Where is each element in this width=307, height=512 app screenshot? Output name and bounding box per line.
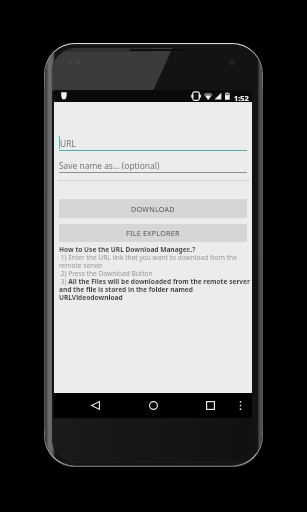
button[interactable]: URL bbox=[59, 136, 247, 151]
button[interactable]: Home bbox=[142, 395, 164, 416]
staticText: How to Use the URL Download Manager..? 1… bbox=[59, 245, 250, 302]
staticText: URL bbox=[60, 138, 76, 149]
staticText: 1:52 bbox=[234, 93, 249, 103]
staticText: FILE EXPLORER bbox=[126, 228, 180, 238]
button[interactable]: More options bbox=[233, 395, 247, 416]
staticText: Save name as... (optional) bbox=[59, 160, 160, 171]
button[interactable]: Recent apps bbox=[199, 395, 221, 416]
button[interactable]: Back bbox=[84, 395, 106, 416]
button[interactable]: Save name as... (optional) bbox=[59, 160, 247, 173]
staticText: DOWNLOAD bbox=[131, 204, 175, 214]
button[interactable]: DOWNLOAD bbox=[59, 199, 247, 218]
button[interactable]: FILE EXPLORER bbox=[59, 224, 247, 242]
